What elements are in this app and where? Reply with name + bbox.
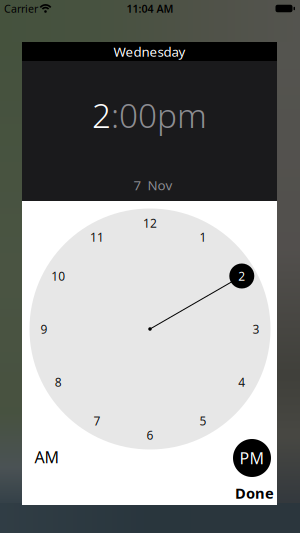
staticText: 2: [238, 268, 245, 284]
staticText: 7: [133, 176, 141, 194]
staticText: 12: [143, 215, 157, 231]
button[interactable]: 7: [93, 413, 100, 429]
button[interactable]: 2: [238, 268, 245, 284]
button[interactable]: 3: [252, 321, 259, 337]
button[interactable]: 9: [40, 321, 47, 337]
staticText: 7: [93, 413, 100, 429]
staticText: PM: [239, 447, 264, 469]
button[interactable]: PM: [233, 439, 271, 477]
button[interactable]: 6: [146, 427, 153, 443]
staticText: :00pm: [111, 93, 207, 137]
button[interactable]: 5: [199, 413, 206, 429]
button[interactable]: 8: [55, 374, 62, 390]
staticText: 5: [199, 413, 206, 429]
staticText: 8: [55, 374, 62, 390]
staticText: 1: [199, 229, 206, 245]
staticText: Done: [235, 483, 274, 503]
button[interactable]: 4: [238, 374, 245, 390]
staticText: 2: [238, 268, 245, 284]
button[interactable]: AM: [34, 446, 59, 468]
staticText: Wednesday: [113, 43, 185, 60]
staticText: Nov: [147, 176, 172, 194]
button[interactable]: 10: [51, 268, 65, 284]
button[interactable]: 11: [90, 229, 104, 245]
staticText: 2: [92, 93, 111, 137]
button[interactable]: Done: [235, 483, 274, 503]
button[interactable]: 1: [199, 229, 206, 245]
staticText: 10: [51, 268, 65, 284]
button[interactable]: 12: [143, 215, 157, 231]
staticText: 11: [90, 229, 104, 245]
staticText: AM: [34, 446, 59, 468]
button[interactable]: 2: [229, 263, 254, 288]
staticText: 9: [40, 321, 47, 337]
staticText: 6: [146, 427, 153, 443]
staticText: 11:04 AM: [126, 1, 173, 16]
staticText: Carrier: [4, 1, 38, 16]
button[interactable]: 7: [133, 176, 172, 194]
staticText: 3: [252, 321, 259, 337]
staticText: 4: [238, 374, 245, 390]
